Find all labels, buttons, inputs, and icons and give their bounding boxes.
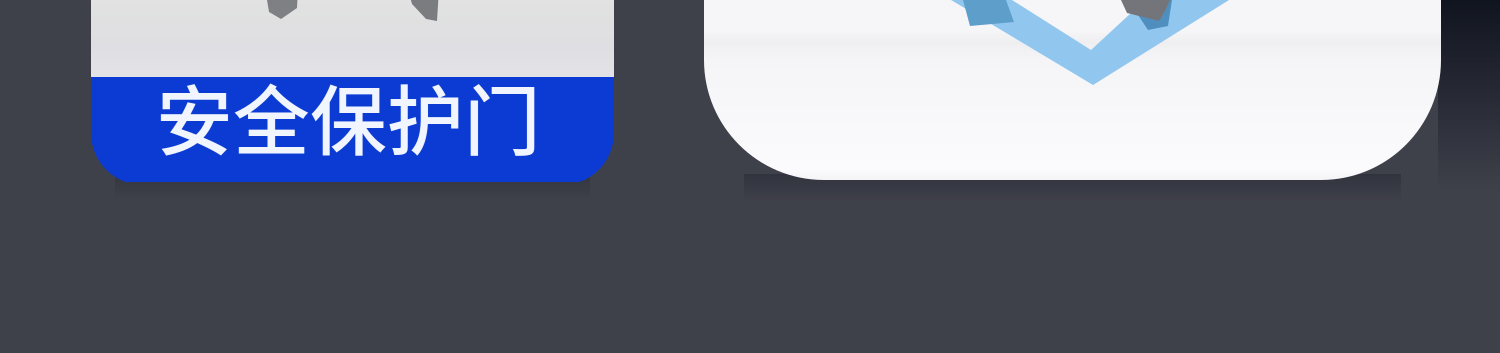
button[interactable]: 安全保护门: [91, 0, 614, 185]
staticText: 安全保护门: [156, 60, 541, 171]
